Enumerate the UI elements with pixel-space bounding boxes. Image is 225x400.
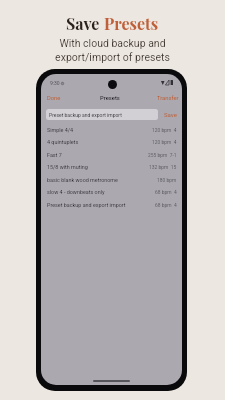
staticText: 15/8 with muting (47, 164, 149, 170)
staticText: Fast 7 (47, 152, 148, 158)
button[interactable]: Simple 4/4 (41, 124, 182, 136)
button[interactable]: basic blank wood metronome (41, 174, 182, 186)
button[interactable]: Preset backup and export import (41, 199, 182, 211)
staticText: Presets (104, 13, 159, 34)
button[interactable]: Done (41, 95, 61, 102)
staticText: slow 4 - downbeats only (47, 189, 155, 195)
button[interactable]: Preset backup and export import (46, 109, 158, 120)
button[interactable]: Fast 7 (41, 149, 182, 161)
button[interactable]: Transfer (157, 95, 182, 102)
staticText: 4 quintuplets (47, 139, 152, 145)
staticText: 120 bpm 4 (152, 127, 177, 133)
button[interactable]: 4 quintuplets (41, 136, 182, 148)
button[interactable]: 15/8 with muting (41, 161, 182, 173)
staticText: 180 bpm (157, 177, 177, 183)
button[interactable]: slow 4 - downbeats only (41, 186, 182, 198)
staticText: 68 bpm 4 (155, 202, 177, 208)
staticText: 68 bpm 4 (155, 189, 177, 195)
staticText: 132 bpm 15 (149, 164, 177, 170)
staticText: With cloud backup and export/import of p… (55, 37, 170, 63)
staticText: 255 bpm 7-1 (148, 152, 177, 158)
staticText: Presets (100, 95, 120, 102)
staticText: Preset backup and export import (49, 112, 122, 118)
staticText: basic blank wood metronome (47, 177, 157, 183)
staticText: 9:30 (50, 80, 60, 86)
staticText: Preset backup and export import (47, 202, 155, 208)
button[interactable]: Save (162, 111, 179, 118)
staticText: Simple 4/4 (47, 127, 152, 133)
staticText: 120 bpm 4 (152, 139, 177, 145)
staticText: Save (66, 13, 104, 34)
